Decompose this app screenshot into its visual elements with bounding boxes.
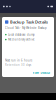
staticText: VIEW DETAILS [32, 71, 49, 74]
staticText: Backup Task Details [10, 19, 48, 25]
staticText: Local database dump [8, 33, 35, 36]
staticText: Cloud Talk · My Website Backup [5, 26, 47, 30]
staticText: Next run in 6 hours [5, 59, 32, 62]
button[interactable]: VIEW DETAILS [31, 70, 51, 75]
staticText: Retention 30 days [5, 63, 31, 67]
staticText: Media library archive [8, 38, 35, 41]
